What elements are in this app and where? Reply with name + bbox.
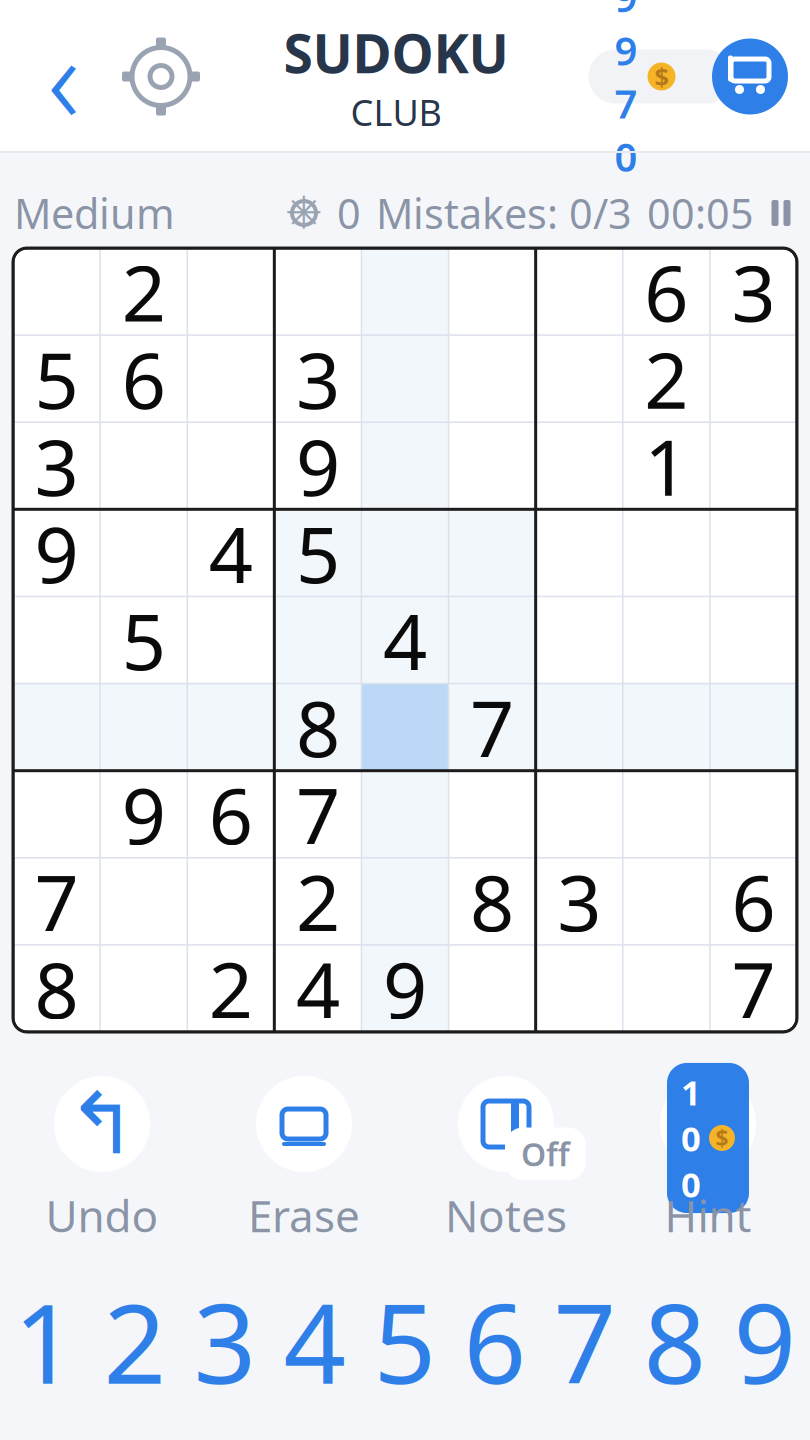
button[interactable]: ↰: [1, 1074, 203, 1244]
button[interactable]: [187, 422, 274, 509]
button[interactable]: [536, 248, 623, 335]
button[interactable]: [536, 422, 623, 509]
button[interactable]: Settings: [122, 37, 200, 115]
button[interactable]: [100, 422, 187, 509]
button[interactable]: [449, 771, 536, 858]
button[interactable]: [361, 335, 448, 422]
button[interactable]: [623, 858, 710, 945]
button[interactable]: Pause: [766, 196, 796, 230]
button[interactable]: [13, 596, 100, 683]
button[interactable]: [623, 771, 710, 858]
button[interactable]: 2: [274, 858, 361, 945]
button[interactable]: [536, 596, 623, 683]
button[interactable]: [361, 684, 448, 771]
button[interactable]: [710, 422, 797, 509]
button[interactable]: 7: [274, 771, 361, 858]
button[interactable]: [187, 596, 274, 683]
button[interactable]: 8: [274, 684, 361, 771]
button[interactable]: 7: [540, 1286, 630, 1396]
button[interactable]: [710, 684, 797, 771]
button[interactable]: 9: [720, 1286, 810, 1396]
button[interactable]: [361, 771, 448, 858]
button[interactable]: Off: [405, 1074, 607, 1244]
button[interactable]: 6: [623, 248, 710, 335]
button[interactable]: 7: [449, 684, 536, 771]
button[interactable]: [361, 509, 448, 596]
button[interactable]: [187, 248, 274, 335]
button[interactable]: 8: [13, 945, 100, 1032]
button[interactable]: 4: [274, 945, 361, 1032]
button[interactable]: [449, 248, 536, 335]
button[interactable]: 6: [187, 771, 274, 858]
button[interactable]: [710, 771, 797, 858]
button[interactable]: 2: [90, 1286, 180, 1396]
button[interactable]: [449, 335, 536, 422]
button[interactable]: 3: [13, 422, 100, 509]
button[interactable]: 6: [710, 858, 797, 945]
button[interactable]: [274, 248, 361, 335]
button[interactable]: 9: [13, 509, 100, 596]
button[interactable]: 2: [187, 945, 274, 1032]
button[interactable]: [187, 684, 274, 771]
button[interactable]: 2: [100, 248, 187, 335]
button[interactable]: 3: [180, 1286, 270, 1396]
button[interactable]: [100, 858, 187, 945]
button[interactable]: 100: [607, 1074, 809, 1244]
button[interactable]: [623, 684, 710, 771]
button[interactable]: Erase: [203, 1074, 405, 1244]
button[interactable]: [449, 422, 536, 509]
button[interactable]: 8: [630, 1286, 720, 1396]
button[interactable]: 3: [710, 248, 797, 335]
button[interactable]: [449, 509, 536, 596]
button[interactable]: 1: [623, 422, 710, 509]
button[interactable]: 5: [274, 509, 361, 596]
button[interactable]: [536, 945, 623, 1032]
button[interactable]: 4: [187, 509, 274, 596]
button[interactable]: 8: [449, 858, 536, 945]
button[interactable]: [100, 684, 187, 771]
button[interactable]: [710, 596, 797, 683]
button[interactable]: [13, 771, 100, 858]
button[interactable]: 2: [623, 335, 710, 422]
button[interactable]: [623, 509, 710, 596]
button[interactable]: 9 970: [588, 49, 733, 103]
button[interactable]: [361, 858, 448, 945]
button[interactable]: [361, 248, 448, 335]
button[interactable]: 3: [274, 335, 361, 422]
button[interactable]: 7: [710, 945, 797, 1032]
button[interactable]: [100, 509, 187, 596]
button[interactable]: [361, 422, 448, 509]
button[interactable]: [536, 335, 623, 422]
button[interactable]: [536, 509, 623, 596]
button[interactable]: Shop: [712, 38, 788, 114]
button[interactable]: 1: [0, 1286, 90, 1396]
button[interactable]: [187, 335, 274, 422]
button[interactable]: Back: [22, 30, 106, 122]
button[interactable]: [623, 596, 710, 683]
button[interactable]: 9: [100, 771, 187, 858]
button[interactable]: [274, 596, 361, 683]
button[interactable]: 4: [361, 596, 448, 683]
button[interactable]: [13, 248, 100, 335]
button[interactable]: [536, 684, 623, 771]
button[interactable]: 9: [361, 945, 448, 1032]
button[interactable]: 5: [100, 596, 187, 683]
button[interactable]: 3: [536, 858, 623, 945]
button[interactable]: 5: [13, 335, 100, 422]
button[interactable]: [623, 945, 710, 1032]
button[interactable]: [536, 771, 623, 858]
button[interactable]: [13, 684, 100, 771]
button[interactable]: [449, 596, 536, 683]
button[interactable]: [187, 858, 274, 945]
button[interactable]: 4: [270, 1286, 360, 1396]
button[interactable]: [710, 335, 797, 422]
button[interactable]: 9: [274, 422, 361, 509]
staticText: 2: [296, 850, 340, 953]
button[interactable]: [710, 509, 797, 596]
button[interactable]: [100, 945, 187, 1032]
button[interactable]: 6: [450, 1286, 540, 1396]
button[interactable]: 7: [13, 858, 100, 945]
button[interactable]: 6: [100, 335, 187, 422]
button[interactable]: 5: [360, 1286, 450, 1396]
button[interactable]: [449, 945, 536, 1032]
